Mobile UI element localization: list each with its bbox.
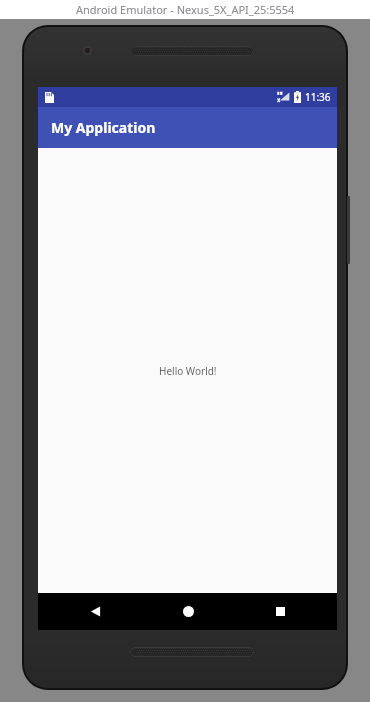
staticText: Android Emulator - Nexus_5X_API_25:5554 [76,2,295,17]
staticText: 11:36 [305,90,331,104]
button[interactable]: Back [60,593,130,630]
button[interactable]: Home [153,593,223,630]
staticText: Hello World! [159,364,217,378]
button[interactable]: Recent apps [245,593,315,630]
staticText: My Application [51,118,156,137]
button[interactable]: My Application [38,107,337,148]
